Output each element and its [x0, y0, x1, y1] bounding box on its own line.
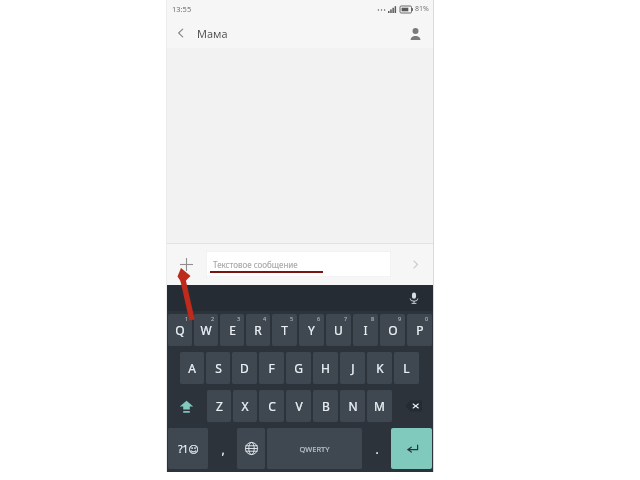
staticText: QWERTY — [299, 444, 330, 454]
button[interactable]: , — [210, 428, 235, 469]
button[interactable]: Z — [207, 390, 231, 422]
staticText: D — [240, 360, 249, 376]
staticText: L — [403, 360, 410, 376]
staticText: , — [221, 441, 225, 457]
staticText: F — [268, 360, 275, 376]
staticText: V — [295, 398, 303, 414]
staticText: 9 — [398, 315, 402, 322]
button[interactable]: Q — [168, 314, 192, 346]
button[interactable]: U — [326, 314, 351, 346]
staticText: 8 — [371, 315, 375, 322]
staticText: Q — [175, 322, 185, 338]
staticText: 81% — [415, 4, 429, 14]
staticText: W — [200, 322, 212, 338]
button[interactable]: A — [180, 352, 204, 384]
button[interactable]: . — [364, 428, 389, 469]
button[interactable]: Contact details — [404, 22, 426, 44]
staticText: R — [254, 322, 262, 338]
button[interactable]: Enter — [391, 428, 432, 469]
staticText: 6 — [317, 315, 321, 322]
button[interactable]: E — [220, 314, 244, 346]
staticText: . — [375, 441, 379, 457]
button[interactable]: M — [367, 390, 392, 422]
staticText: U — [334, 322, 343, 338]
staticText: H — [321, 360, 330, 376]
staticText: 1 — [185, 315, 189, 322]
button[interactable]: S — [206, 352, 230, 384]
staticText: 7 — [344, 315, 348, 322]
button[interactable]: K — [367, 352, 392, 384]
staticText: ?1☺ — [178, 442, 199, 456]
button[interactable]: P — [407, 314, 432, 346]
staticText: T — [281, 322, 288, 338]
staticText: Текстовое сообщение — [213, 259, 298, 270]
staticText: 0 — [425, 315, 429, 322]
button[interactable]: T — [272, 314, 297, 346]
button[interactable]: G — [286, 352, 311, 384]
button[interactable]: W — [194, 314, 218, 346]
button[interactable]: L — [394, 352, 419, 384]
button[interactable]: J — [340, 352, 365, 384]
staticText: 4 — [263, 315, 267, 322]
button[interactable]: D — [232, 352, 257, 384]
button[interactable]: Send — [402, 251, 428, 277]
button[interactable]: Текстовое сообщение — [206, 251, 391, 277]
button[interactable]: Y — [299, 314, 324, 346]
button[interactable]: F — [259, 352, 284, 384]
button[interactable]: R — [246, 314, 270, 346]
button[interactable]: Backspace — [394, 390, 432, 422]
staticText: J — [351, 360, 355, 376]
staticText: Y — [308, 322, 315, 338]
button[interactable]: Change language — [237, 428, 265, 469]
staticText: N — [348, 398, 358, 414]
staticText: 2 — [211, 315, 215, 322]
button[interactable]: O — [380, 314, 405, 346]
staticText: I — [363, 322, 368, 338]
button[interactable]: I — [353, 314, 378, 346]
button[interactable]: H — [313, 352, 338, 384]
staticText: E — [229, 322, 236, 338]
button[interactable]: X — [233, 390, 257, 422]
staticText: G — [294, 360, 303, 376]
button[interactable]: Shift — [168, 390, 205, 422]
button[interactable]: N — [340, 390, 365, 422]
button[interactable]: Add attachment — [172, 250, 200, 278]
staticText: Мама — [197, 26, 228, 41]
staticText: A — [188, 360, 196, 376]
button[interactable]: V — [286, 390, 311, 422]
staticText: 13:55 — [172, 4, 192, 14]
staticText: S — [215, 360, 222, 376]
button[interactable]: Мама — [166, 18, 236, 48]
staticText: X — [241, 398, 249, 414]
staticText: C — [268, 398, 276, 414]
staticText: K — [376, 360, 384, 376]
staticText: M — [374, 398, 385, 414]
button[interactable]: ?1☺ — [168, 428, 208, 469]
button[interactable]: QWERTY — [267, 428, 362, 469]
staticText: B — [322, 398, 330, 414]
staticText: Z — [216, 398, 223, 414]
button[interactable]: Voice input — [404, 288, 424, 308]
staticText: P — [416, 322, 424, 338]
button[interactable]: C — [259, 390, 284, 422]
staticText: 3 — [237, 315, 241, 322]
staticText: 5 — [290, 315, 294, 322]
button[interactable]: B — [313, 390, 338, 422]
staticText: O — [388, 322, 398, 338]
